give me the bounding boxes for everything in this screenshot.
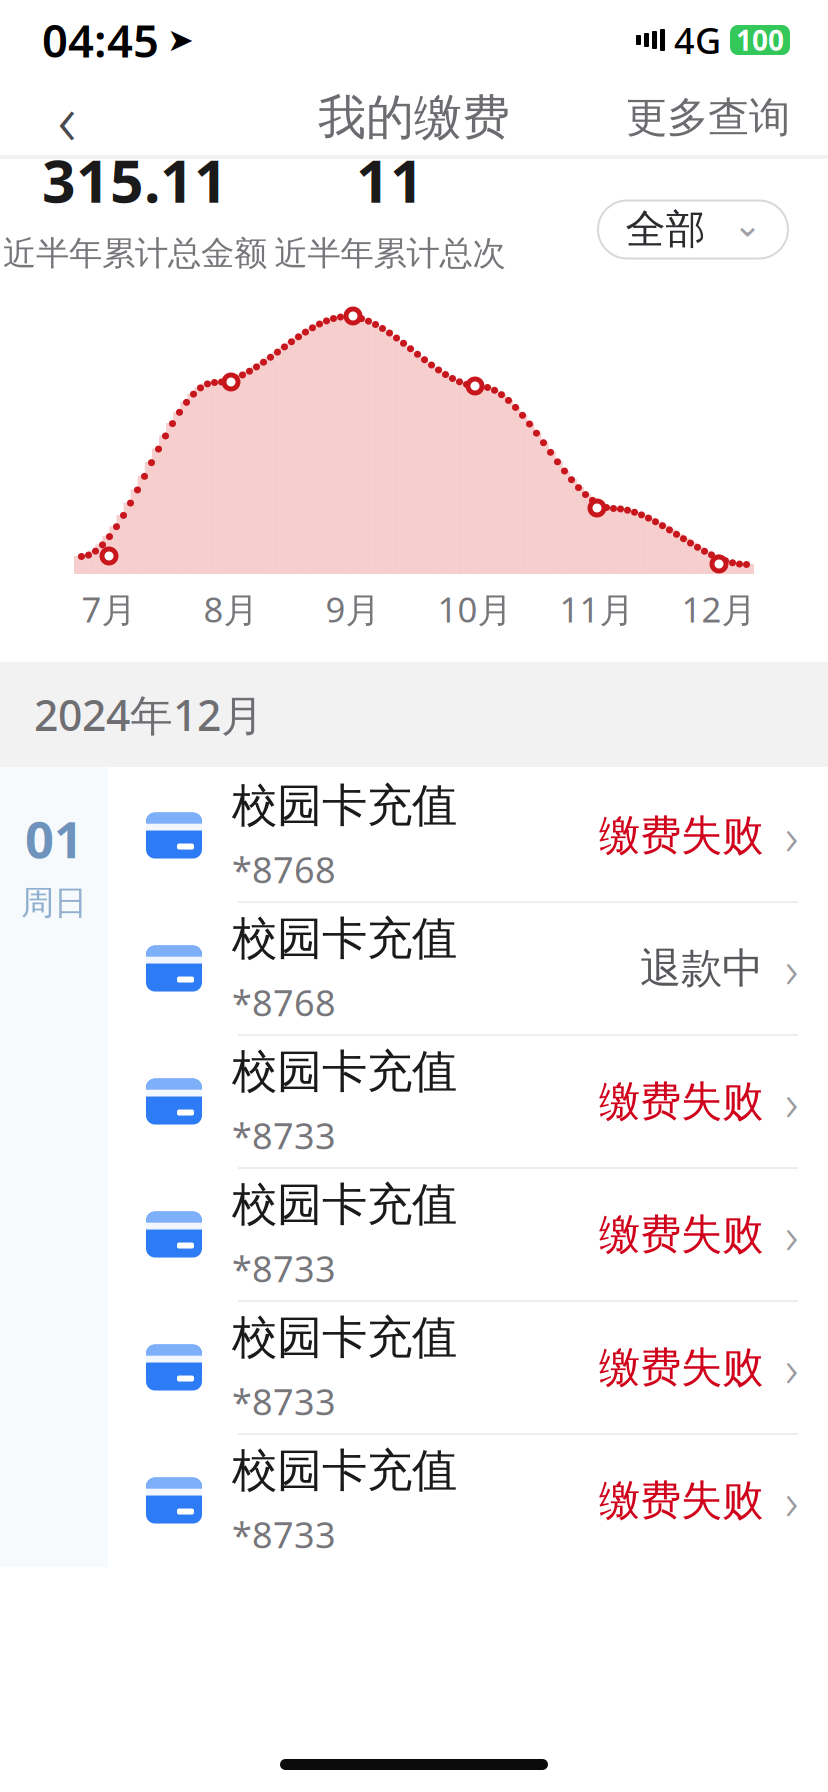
staticText: 近半年累计总金额(元): [3, 233, 267, 318]
staticText: ›: [785, 1201, 798, 1268]
staticText: 04:45: [42, 10, 159, 70]
staticText: 01: [25, 805, 83, 872]
staticText: 12月: [681, 586, 756, 632]
staticText: 8月: [203, 586, 258, 632]
staticText: 近半年累计总次数(次): [274, 233, 505, 318]
staticText: 校园卡充值: [232, 1310, 457, 1365]
staticText: *8768: [232, 978, 336, 1026]
staticText: 缴费失败: [599, 810, 763, 861]
staticText: ›: [785, 935, 798, 1002]
button[interactable]: 校园卡充值: [108, 1167, 828, 1300]
staticText: 缴费失败: [599, 1342, 763, 1393]
staticText: ›: [785, 802, 798, 869]
staticText: 校园卡充值: [232, 778, 457, 833]
staticText: 缴费失败: [599, 1475, 763, 1526]
staticText: 校园卡充值: [232, 1177, 457, 1232]
staticText: 退款中: [640, 943, 763, 994]
button[interactable]: 返回: [22, 80, 112, 155]
staticText: *8733: [232, 1244, 336, 1292]
staticText: 周日: [21, 882, 87, 923]
staticText: 更多查询: [626, 92, 790, 143]
staticText: 9月: [325, 586, 380, 632]
staticText: 校园卡充值: [232, 911, 457, 966]
button[interactable]: 校园卡充值: [108, 901, 828, 1034]
staticText: 10月: [437, 586, 512, 632]
staticText: 缴费失败: [599, 1209, 763, 1260]
staticText: *8733: [232, 1111, 336, 1159]
staticText: 11月: [559, 586, 634, 632]
button[interactable]: 校园卡充值: [108, 1300, 828, 1433]
staticText: ›: [785, 1068, 798, 1135]
staticText: 4G: [674, 16, 721, 64]
staticText: 缴费失败: [599, 1076, 763, 1127]
staticText: ›: [785, 1334, 798, 1401]
button[interactable]: 校园卡充值: [108, 768, 828, 901]
button[interactable]: 校园卡充值: [108, 1433, 828, 1566]
staticText: 315.11: [42, 141, 228, 219]
staticText: 100: [736, 21, 784, 59]
staticText: ⌄: [733, 205, 762, 244]
button[interactable]: 全部: [598, 200, 788, 258]
staticText: 全部: [625, 205, 705, 254]
staticText: *8733: [232, 1510, 336, 1558]
staticText: *8768: [232, 845, 336, 893]
staticText: 7月: [81, 586, 136, 632]
staticText: *8733: [232, 1377, 336, 1425]
staticText: ‹: [57, 70, 76, 165]
staticText: 我的缴费: [318, 88, 510, 147]
staticText: 2024年12月: [34, 686, 264, 743]
button[interactable]: 校园卡充值: [108, 1034, 828, 1167]
staticText: 校园卡充值: [232, 1044, 457, 1099]
button[interactable]: 更多查询: [610, 80, 806, 155]
staticText: ›: [785, 1467, 798, 1534]
staticText: ➤: [167, 22, 194, 58]
staticText: 11: [356, 141, 424, 219]
staticText: 校园卡充值: [232, 1443, 457, 1498]
